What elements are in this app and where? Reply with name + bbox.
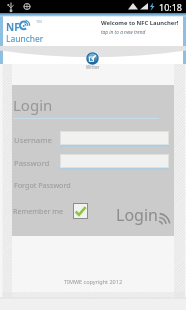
button[interactable]: Login [116, 204, 171, 226]
staticText: Remember me [13, 206, 64, 216]
button[interactable] [60, 154, 169, 170]
staticText: NF [6, 20, 20, 34]
staticText: TIMWE copyright 2012 [64, 278, 123, 285]
staticText: Login [13, 95, 53, 115]
staticText: TM [36, 19, 42, 24]
staticText: Forgot Password [14, 180, 71, 190]
staticText: Welcome to NFC Launcher! [101, 19, 179, 27]
staticText: 10:18 [159, 1, 183, 13]
staticText: Writer [86, 64, 100, 70]
staticText: Launcher [6, 33, 44, 45]
button[interactable]: Writer [83, 52, 102, 71]
button[interactable]: Forgot Password [14, 180, 71, 190]
staticText: tap in to a new trend [101, 29, 146, 36]
staticText: Login [116, 204, 158, 226]
button[interactable] [60, 131, 169, 147]
button[interactable]: Remember me [13, 203, 88, 219]
staticText: Password [14, 158, 50, 169]
staticText: Username [14, 135, 52, 146]
